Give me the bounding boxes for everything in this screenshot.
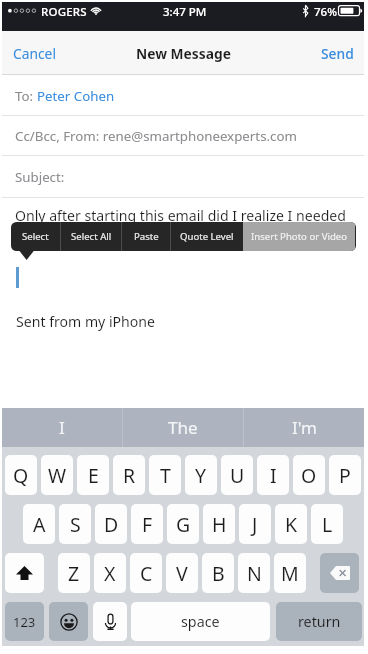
staticText: New Message bbox=[136, 44, 231, 63]
button[interactable]: Shift bbox=[5, 553, 44, 593]
staticText: Select bbox=[22, 230, 49, 243]
staticText: K bbox=[285, 511, 298, 538]
button[interactable]: U bbox=[221, 455, 253, 495]
button[interactable]: Select bbox=[11, 222, 60, 251]
button[interactable]: A bbox=[23, 504, 55, 544]
button[interactable]: return bbox=[276, 602, 362, 641]
button[interactable]: B bbox=[202, 553, 234, 593]
staticText: W bbox=[48, 462, 67, 489]
button[interactable]: Q bbox=[5, 455, 37, 495]
button[interactable]: Backspace bbox=[320, 553, 359, 593]
staticText: V bbox=[176, 560, 188, 587]
staticText: Paste bbox=[134, 230, 159, 243]
staticText: I bbox=[270, 462, 277, 489]
staticText: E bbox=[88, 462, 99, 489]
staticText: J bbox=[252, 511, 258, 538]
staticText: N bbox=[247, 560, 262, 587]
staticText: Quote Level bbox=[180, 230, 234, 243]
button[interactable]: Emoji bbox=[49, 602, 88, 641]
button[interactable]: Z bbox=[58, 553, 90, 593]
button[interactable]: T bbox=[149, 455, 181, 495]
button[interactable]: D bbox=[95, 504, 127, 544]
button[interactable]: N bbox=[238, 553, 270, 593]
button[interactable]: W bbox=[41, 455, 73, 495]
staticText: Cc/Bcc, From: rene@smartphoneexperts.com bbox=[15, 127, 297, 145]
staticText: Only after starting this email did I rea… bbox=[15, 206, 346, 225]
staticText: H bbox=[212, 511, 227, 538]
button[interactable]: Insert Photo or Video bbox=[243, 222, 355, 251]
staticText: Q bbox=[13, 462, 29, 489]
staticText: L bbox=[322, 511, 333, 538]
button[interactable]: I bbox=[257, 455, 289, 495]
staticText: Send bbox=[321, 44, 354, 63]
staticText: C bbox=[140, 560, 153, 587]
button[interactable]: I bbox=[2, 408, 122, 447]
staticText: D bbox=[104, 511, 119, 538]
staticText: Insert Photo or Video bbox=[251, 230, 348, 243]
staticText: S bbox=[70, 511, 81, 538]
staticText: Y bbox=[195, 462, 207, 489]
button[interactable]: The bbox=[123, 408, 243, 447]
staticText: Select All bbox=[71, 230, 112, 243]
staticText: X bbox=[104, 560, 116, 587]
staticText: 76% bbox=[314, 4, 337, 20]
button[interactable]: I'm bbox=[244, 408, 364, 447]
staticText: O bbox=[301, 462, 317, 489]
staticText: 123 bbox=[13, 613, 36, 631]
button[interactable]: E bbox=[77, 455, 109, 495]
button[interactable]: P bbox=[329, 455, 361, 495]
button[interactable]: Subject: bbox=[2, 156, 364, 198]
button[interactable]: Paste bbox=[122, 222, 170, 251]
button[interactable]: Quote Level bbox=[171, 222, 243, 251]
staticText: M bbox=[281, 560, 299, 587]
button[interactable]: 123 bbox=[5, 602, 44, 641]
button[interactable]: L bbox=[311, 504, 343, 544]
staticText: space bbox=[181, 612, 220, 631]
button[interactable]: Cancel bbox=[2, 35, 68, 72]
staticText: Cancel bbox=[13, 44, 56, 63]
staticText: I bbox=[59, 416, 65, 439]
button[interactable]: K bbox=[275, 504, 307, 544]
button[interactable]: M bbox=[274, 553, 306, 593]
button[interactable]: F bbox=[131, 504, 163, 544]
button[interactable]: C bbox=[130, 553, 162, 593]
button[interactable]: Y bbox=[185, 455, 217, 495]
staticText: G bbox=[176, 511, 191, 538]
staticText: The bbox=[168, 416, 198, 439]
button[interactable]: S bbox=[59, 504, 91, 544]
button[interactable]: Send bbox=[309, 35, 364, 72]
button[interactable]: Cc/Bcc, From: rene@smartphoneexperts.com bbox=[2, 116, 364, 156]
staticText: return bbox=[298, 612, 341, 631]
staticText: Sent from my iPhone bbox=[16, 312, 155, 331]
button[interactable]: J bbox=[239, 504, 271, 544]
staticText: B bbox=[212, 560, 225, 587]
button[interactable]: X bbox=[94, 553, 126, 593]
staticText: U bbox=[230, 462, 245, 489]
staticText: T bbox=[160, 462, 171, 489]
staticText: I'm bbox=[292, 416, 317, 439]
staticText: Subject: bbox=[15, 168, 65, 186]
staticText: To: bbox=[15, 87, 37, 105]
staticText: Peter Cohen bbox=[37, 87, 115, 105]
button[interactable]: H bbox=[203, 504, 235, 544]
button[interactable]: G bbox=[167, 504, 199, 544]
staticText: R bbox=[123, 462, 136, 489]
staticText: P bbox=[339, 462, 351, 489]
button[interactable]: Dictate bbox=[93, 602, 127, 641]
staticText: Z bbox=[68, 560, 80, 587]
staticText: ROGERS bbox=[41, 4, 87, 20]
staticText: A bbox=[33, 511, 46, 538]
button[interactable]: V bbox=[166, 553, 198, 593]
button[interactable]: To: bbox=[2, 75, 364, 116]
staticText: F bbox=[142, 511, 153, 538]
button[interactable]: O bbox=[293, 455, 325, 495]
staticText: 3:47 PM bbox=[163, 4, 207, 20]
button[interactable]: Select All bbox=[61, 222, 121, 251]
button[interactable]: space bbox=[131, 602, 270, 641]
button[interactable]: R bbox=[113, 455, 145, 495]
